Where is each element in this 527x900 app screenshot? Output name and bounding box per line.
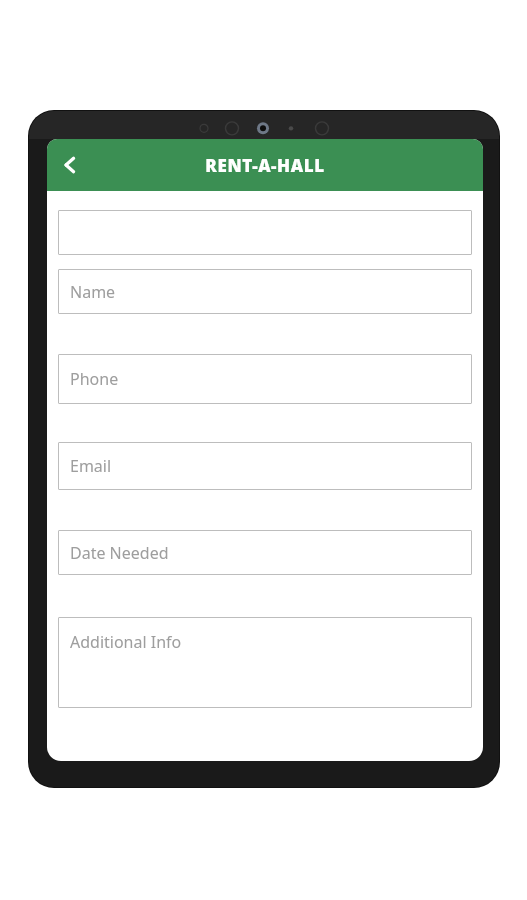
button[interactable]: Email <box>58 442 472 490</box>
button[interactable]: Phone <box>58 354 472 404</box>
button[interactable]: Additional Info <box>58 617 472 708</box>
button[interactable]: Date Needed <box>58 530 472 575</box>
staticText: Name <box>70 281 116 303</box>
staticText: Email <box>70 455 112 477</box>
button[interactable]: Back <box>47 142 93 188</box>
button[interactable] <box>58 210 472 255</box>
staticText: Date Needed <box>70 542 169 564</box>
staticText: Phone <box>70 368 119 390</box>
staticText: Additional Info <box>70 631 182 653</box>
button[interactable]: Name <box>58 269 472 314</box>
staticText: RENT-A-HALL <box>205 154 325 177</box>
